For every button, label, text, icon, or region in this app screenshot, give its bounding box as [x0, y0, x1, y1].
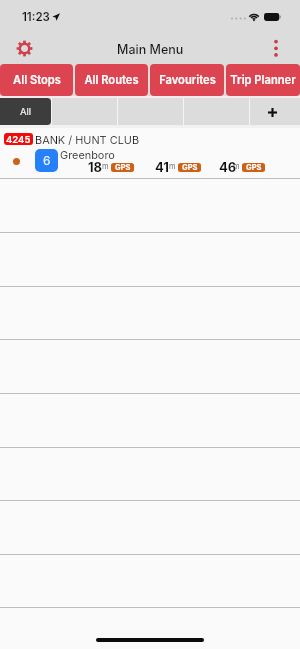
button[interactable]: Favourites — [150, 64, 224, 96]
staticText: All — [20, 106, 32, 117]
staticText: GPS — [182, 163, 198, 172]
staticText: 4245 — [6, 134, 31, 145]
staticText: Greenboro — [60, 148, 115, 161]
staticText: Main Menu — [117, 42, 184, 57]
staticText: 18 — [88, 159, 103, 175]
staticText: All Stops — [13, 73, 61, 87]
button[interactable]: All Routes — [75, 64, 148, 96]
button[interactable]: All Stops — [0, 64, 73, 96]
staticText: m — [169, 162, 176, 171]
button[interactable]: Add — [250, 98, 300, 125]
staticText: 46 — [219, 159, 237, 175]
staticText: GPS — [246, 163, 262, 172]
button[interactable]: More options — [264, 36, 288, 60]
staticText: m — [233, 162, 240, 171]
staticText: 11:23 — [22, 10, 50, 24]
staticText: GPS — [115, 163, 131, 172]
staticText: 41 — [155, 159, 169, 175]
button[interactable]: Trip Planner — [226, 64, 300, 96]
staticText: All Routes — [84, 73, 139, 87]
staticText: m — [102, 162, 109, 171]
button[interactable]: Settings — [12, 36, 36, 60]
button[interactable]: 4245 — [0, 128, 300, 178]
staticText: 6 — [43, 153, 51, 168]
button[interactable]: All — [0, 98, 51, 125]
staticText: BANK / HUNT CLUB — [35, 133, 140, 146]
staticText: Favourites — [159, 73, 216, 87]
staticText: Trip Planner — [230, 73, 296, 87]
